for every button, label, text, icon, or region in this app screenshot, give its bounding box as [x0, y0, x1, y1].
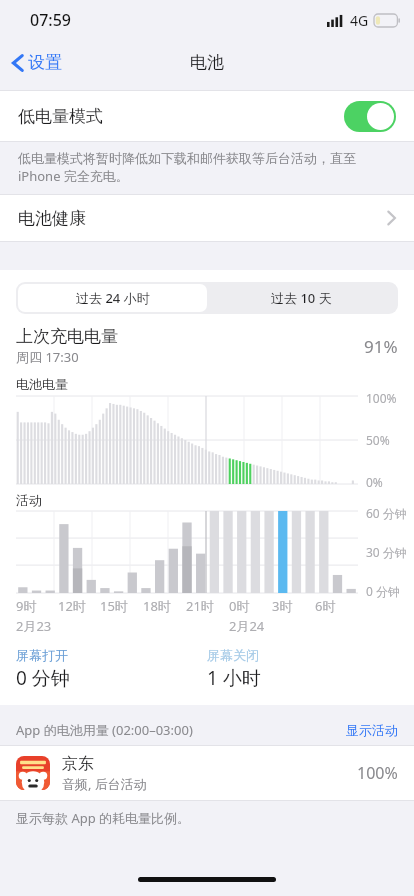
staticText: 设置 [28, 52, 62, 73]
staticText: 显示活动 [346, 722, 398, 738]
staticText: 18时 [143, 597, 171, 615]
staticText: 2月23日 [16, 617, 58, 635]
staticText: 0时 [229, 597, 250, 615]
staticText: 上次充电电量 [16, 326, 118, 347]
button[interactable]: 电池健康 [0, 195, 414, 241]
staticText: 3时 [272, 597, 293, 615]
button[interactable]: 京东 [0, 746, 414, 800]
staticText: 0% [366, 474, 383, 490]
staticText: 电池健康 [18, 208, 86, 229]
staticText: 过去 10 天 [271, 289, 332, 307]
staticText: 91% [364, 335, 398, 358]
staticText: 活动 [16, 492, 42, 508]
staticText: 6时 [315, 597, 336, 615]
staticText: App 的电池用量 (02:00–03:00) [16, 721, 193, 739]
button[interactable]: 过去 24 小时 [18, 284, 207, 312]
staticText: 屏幕打开 [16, 647, 68, 663]
staticText: 21时 [186, 597, 214, 615]
staticText: 0 分钟 [366, 583, 400, 599]
staticText: 30 分钟 [366, 544, 407, 560]
staticText: 4G [350, 11, 369, 30]
staticText: 屏幕关闭 [207, 647, 259, 663]
staticText: 显示每款 App 的耗电量比例。 [16, 809, 191, 827]
staticText: 100% [366, 390, 397, 406]
staticText: 60 分钟 [366, 505, 407, 521]
button[interactable]: 低电量模式 [0, 91, 414, 141]
staticText: 0 分钟 [16, 665, 70, 691]
staticText: 周四 17:30 [16, 348, 79, 366]
staticText: 音频, 后台活动 [62, 775, 147, 793]
button[interactable]: 过去 10 天 [207, 284, 396, 312]
staticText: 2月24日 [229, 617, 272, 635]
staticText: 15时 [100, 597, 128, 615]
button[interactable]: 设置 [8, 48, 66, 77]
staticText: 12时 [58, 597, 86, 615]
staticText: 50% [366, 432, 390, 448]
staticText: 07:59 [30, 9, 71, 31]
button[interactable]: 低电量模式开关 [344, 101, 396, 132]
staticText: 过去 24 小时 [76, 289, 150, 307]
staticText: 电池电量 [16, 376, 68, 392]
staticText: 低电量模式 [18, 106, 103, 127]
staticText: 京东 [62, 754, 94, 774]
staticText: 9时 [16, 597, 37, 615]
staticText: 电池 [190, 52, 224, 73]
staticText: 1 小时 [207, 665, 261, 691]
button[interactable]: 显示活动 [346, 722, 398, 738]
staticText: 100% [357, 762, 398, 784]
staticText: 低电量模式将暂时降低如下载和邮件获取等后台活动，直至 iPhone 完全充电。 [18, 149, 396, 185]
